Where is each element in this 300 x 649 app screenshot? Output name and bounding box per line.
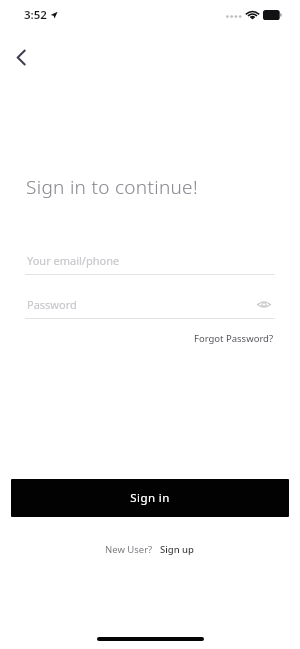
staticText: New User? <box>105 543 153 556</box>
button[interactable]: Your email/phone <box>25 249 275 275</box>
button[interactable]: Sign in <box>11 479 289 517</box>
button[interactable]: Show password <box>253 293 275 315</box>
button[interactable]: Forgot Password? <box>192 330 276 347</box>
staticText: 3:52 <box>24 7 47 23</box>
staticText: Your email/phone <box>27 253 120 268</box>
staticText: Sign up <box>160 543 194 556</box>
button[interactable]: Back <box>8 44 34 70</box>
staticText: Forgot Password? <box>194 332 274 345</box>
button[interactable]: Sign up <box>159 541 195 558</box>
button[interactable]: Password <box>25 293 275 315</box>
staticText: Sign in <box>130 490 170 506</box>
staticText: Password <box>27 297 77 312</box>
staticText: Sign in to continue! <box>26 174 198 200</box>
